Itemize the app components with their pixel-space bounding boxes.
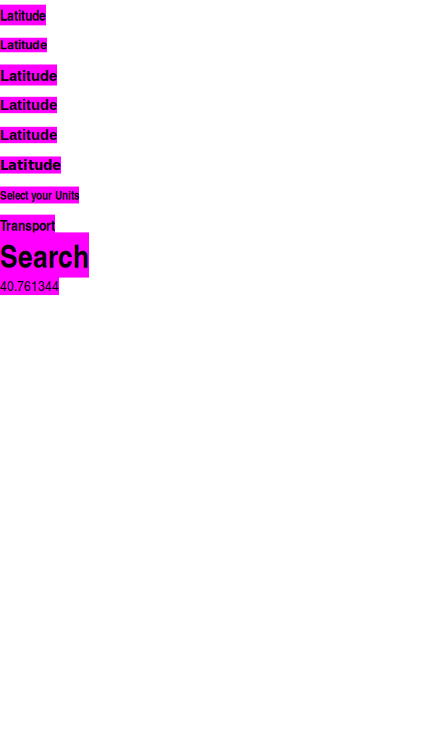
staticText: Latitude	[0, 64, 57, 85]
staticText: Latitude	[0, 5, 46, 25]
staticText: Latitude	[0, 127, 57, 143]
staticText: Latitude	[0, 97, 57, 113]
staticText: Latitude	[0, 156, 61, 174]
staticText: Search	[0, 232, 89, 278]
staticText: 40.761344	[0, 275, 59, 295]
staticText: Transport	[0, 215, 55, 235]
staticText: Select your Units	[0, 186, 79, 203]
staticText: Latitude	[0, 38, 47, 52]
